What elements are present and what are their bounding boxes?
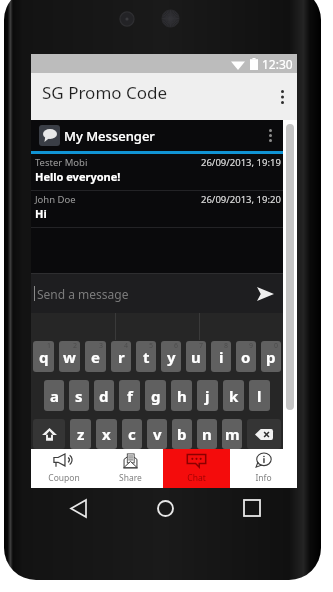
staticText: 5 [149,341,154,351]
button[interactable]: u [186,341,206,372]
staticText: y [167,347,176,367]
staticText: 6 [174,341,179,351]
staticText: 2 [73,341,78,351]
button[interactable]: x [96,419,117,449]
button[interactable]: Chat [163,449,230,488]
staticText: b [177,424,187,444]
button[interactable]: f [119,380,140,411]
staticText: John Doe [35,193,76,206]
staticText: Tester Mobi [35,156,88,169]
button[interactable]: Tester Mobi [31,154,283,191]
button[interactable]: p [261,341,281,372]
staticText: x [102,424,111,444]
button[interactable]: t [136,341,156,372]
button[interactable]: Messenger options [257,120,283,151]
button[interactable]: More options [267,73,297,120]
staticText: n [202,424,212,444]
staticText: 0 [274,341,279,351]
staticText: a [50,386,59,406]
button[interactable]: r [111,341,131,372]
staticText: 9 [249,341,254,351]
staticText: Send a message [37,286,129,302]
button[interactable]: a [44,380,64,411]
button[interactable]: Recent apps [232,488,272,528]
staticText: 3 [99,341,104,351]
button[interactable]: q [33,341,54,372]
staticText: 1 [47,341,52,351]
staticText: q [39,347,49,367]
button[interactable]: Back [58,488,98,528]
button[interactable]: o [236,341,256,372]
button[interactable]: w [59,341,80,372]
staticText: k [229,386,239,406]
staticText: My Messenger [64,127,155,145]
staticText: t [143,347,150,367]
staticText: 4 [124,341,129,351]
staticText: w [63,347,76,367]
button[interactable]: i [211,341,231,372]
button[interactable]: John Doe [31,191,283,228]
button[interactable]: e [85,341,106,372]
button[interactable]: Shift [33,419,65,449]
staticText: 7 [199,341,204,351]
button[interactable]: g [145,380,166,411]
button[interactable]: Home [145,488,185,528]
staticText: c [128,424,136,444]
button[interactable]: z [70,419,91,449]
button[interactable]: Info [230,449,297,488]
staticText: z [77,424,85,444]
staticText: Hi [35,206,47,221]
button[interactable]: v [147,419,167,449]
button[interactable]: k [223,380,244,411]
staticText: s [75,386,83,406]
staticText: h [177,386,187,406]
staticText: 26/09/2013, 19:20 [201,193,281,206]
button[interactable]: l [249,380,270,411]
button[interactable]: Share [97,449,163,488]
staticText: p [266,347,276,367]
staticText: u [191,347,201,367]
staticText: e [91,347,100,367]
staticText: r [118,347,125,367]
staticText: f [127,386,133,406]
button[interactable]: d [94,380,114,411]
button[interactable]: Backspace [247,419,281,449]
staticText: j [205,386,210,406]
button[interactable]: Coupon [31,449,97,488]
staticText: 12:30 [262,56,293,72]
staticText: 8 [224,341,229,351]
button[interactable]: j [197,380,218,411]
staticText: i [219,347,224,367]
button[interactable]: Send [247,274,283,313]
staticText: m [225,424,240,444]
staticText: SG Promo Code [42,81,168,104]
button[interactable]: n [197,419,217,449]
button[interactable]: b [172,419,192,449]
staticText: d [99,386,109,406]
button[interactable]: My Messenger [31,120,283,151]
button[interactable]: s [69,380,89,411]
button[interactable]: c [122,419,142,449]
staticText: Hello everyone! [35,169,121,184]
staticText: g [151,386,161,406]
staticText: Share [119,472,142,484]
staticText: l [257,386,262,406]
staticText: 26/09/2013, 19:19 [201,156,281,169]
button[interactable]: m [222,419,242,449]
button[interactable]: y [161,341,181,372]
staticText: Coupon [48,472,80,484]
button[interactable]: h [171,380,192,411]
staticText: v [153,424,162,444]
staticText: Info [255,472,272,484]
staticText: o [241,347,251,367]
staticText: Chat [187,472,206,484]
